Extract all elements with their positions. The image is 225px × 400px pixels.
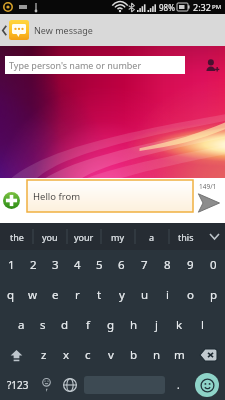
button[interactable]: Change language bbox=[57, 370, 83, 400]
button[interactable]: your bbox=[67, 223, 101, 250]
button[interactable]: Back bbox=[0, 14, 9, 46]
button[interactable]: 8 bbox=[156, 250, 179, 280]
button[interactable]: a bbox=[135, 223, 169, 250]
button[interactable]: l bbox=[191, 310, 214, 340]
button[interactable]: m bbox=[168, 340, 191, 370]
button[interactable]: d bbox=[54, 310, 76, 340]
staticText: 8 bbox=[164, 257, 171, 273]
staticText: d bbox=[61, 317, 69, 333]
staticText: e bbox=[52, 287, 59, 303]
button[interactable]: h bbox=[122, 310, 145, 340]
staticText: b bbox=[130, 347, 138, 363]
button[interactable]: e bbox=[44, 280, 66, 310]
staticText: k bbox=[176, 317, 183, 333]
staticText: 5 bbox=[96, 257, 103, 273]
button[interactable]: Backspace bbox=[191, 340, 225, 370]
staticText: 0 bbox=[210, 257, 217, 273]
button[interactable]: j bbox=[145, 310, 168, 340]
button[interactable]: Send bbox=[197, 193, 220, 213]
staticText: 9 bbox=[187, 257, 194, 273]
staticText: c bbox=[85, 347, 91, 363]
button[interactable]: x bbox=[55, 340, 77, 370]
staticText: Hello from bbox=[33, 190, 81, 203]
button[interactable]: w bbox=[22, 280, 44, 310]
staticText: you bbox=[42, 231, 58, 243]
button[interactable]: . bbox=[167, 370, 189, 400]
button[interactable]: i bbox=[156, 280, 179, 310]
button[interactable]: 6 bbox=[110, 250, 133, 280]
staticText: 98% bbox=[159, 2, 175, 13]
staticText: New message bbox=[34, 24, 93, 36]
button[interactable]: Shift bbox=[0, 340, 33, 370]
staticText: this bbox=[178, 231, 194, 243]
staticText: v bbox=[108, 347, 114, 363]
button[interactable]: More suggestions bbox=[203, 223, 225, 250]
button[interactable]: this bbox=[169, 223, 203, 250]
button[interactable]: q bbox=[0, 280, 22, 310]
staticText: m bbox=[174, 347, 185, 363]
button[interactable]: Send message bbox=[189, 370, 225, 400]
button[interactable]: g bbox=[99, 310, 122, 340]
staticText: w bbox=[28, 287, 38, 303]
button[interactable]: 3 bbox=[44, 250, 66, 280]
staticText: 1 bbox=[8, 257, 15, 273]
staticText: my bbox=[111, 231, 125, 243]
staticText: 7 bbox=[141, 257, 148, 273]
button[interactable]: Emoji bbox=[36, 370, 57, 400]
button[interactable]: ?123 bbox=[0, 370, 36, 400]
button[interactable]: 5 bbox=[88, 250, 110, 280]
button[interactable]: u bbox=[133, 280, 156, 310]
button[interactable]: Messages bbox=[9, 20, 29, 40]
button[interactable]: o bbox=[179, 280, 202, 310]
staticText: g bbox=[107, 317, 115, 333]
button[interactable]: b bbox=[122, 340, 145, 370]
staticText: 3 bbox=[52, 257, 59, 273]
staticText: i bbox=[166, 287, 169, 303]
button[interactable]: Type person's name or number bbox=[5, 56, 185, 74]
staticText: ?123 bbox=[7, 378, 29, 392]
staticText: 4 bbox=[74, 257, 81, 273]
button[interactable]: t bbox=[88, 280, 110, 310]
staticText: . bbox=[177, 378, 180, 392]
button[interactable]: n bbox=[145, 340, 168, 370]
button[interactable]: v bbox=[99, 340, 122, 370]
button[interactable]: c bbox=[77, 340, 99, 370]
button[interactable]: z bbox=[33, 340, 55, 370]
button[interactable]: you bbox=[33, 223, 67, 250]
button[interactable]: y bbox=[110, 280, 133, 310]
staticText: u bbox=[141, 287, 149, 303]
button[interactable]: f bbox=[76, 310, 99, 340]
staticText: z bbox=[41, 347, 47, 363]
button[interactable]: 9 bbox=[179, 250, 202, 280]
button[interactable]: s bbox=[32, 310, 54, 340]
button[interactable]: Hello from bbox=[27, 180, 193, 212]
staticText: f bbox=[86, 317, 90, 333]
staticText: 2 bbox=[30, 257, 37, 273]
button[interactable]: my bbox=[101, 223, 135, 250]
staticText: a bbox=[149, 231, 155, 243]
staticText: x bbox=[63, 347, 70, 363]
staticText: 2:32 bbox=[193, 1, 211, 13]
button[interactable]: a bbox=[10, 310, 32, 340]
button[interactable]: 1 bbox=[0, 250, 22, 280]
staticText: o bbox=[187, 287, 194, 303]
staticText: your bbox=[74, 231, 94, 243]
staticText: p bbox=[210, 287, 218, 303]
staticText: r bbox=[75, 287, 80, 303]
staticText: 149/1 bbox=[199, 182, 217, 191]
staticText: Type person's name or number bbox=[9, 59, 142, 71]
button[interactable]: r bbox=[66, 280, 88, 310]
staticText: h bbox=[130, 317, 138, 333]
button[interactable]: 7 bbox=[133, 250, 156, 280]
button[interactable]: 4 bbox=[66, 250, 88, 280]
staticText: 6 bbox=[118, 257, 125, 273]
button[interactable]: k bbox=[168, 310, 191, 340]
button[interactable]: Add attachment bbox=[3, 192, 20, 209]
button[interactable]: p bbox=[202, 280, 225, 310]
button[interactable]: Add contact bbox=[201, 54, 223, 76]
button[interactable]: the bbox=[0, 223, 33, 250]
button[interactable]: 2 bbox=[22, 250, 44, 280]
button[interactable]: 0 bbox=[202, 250, 225, 280]
staticText: s bbox=[40, 317, 46, 333]
